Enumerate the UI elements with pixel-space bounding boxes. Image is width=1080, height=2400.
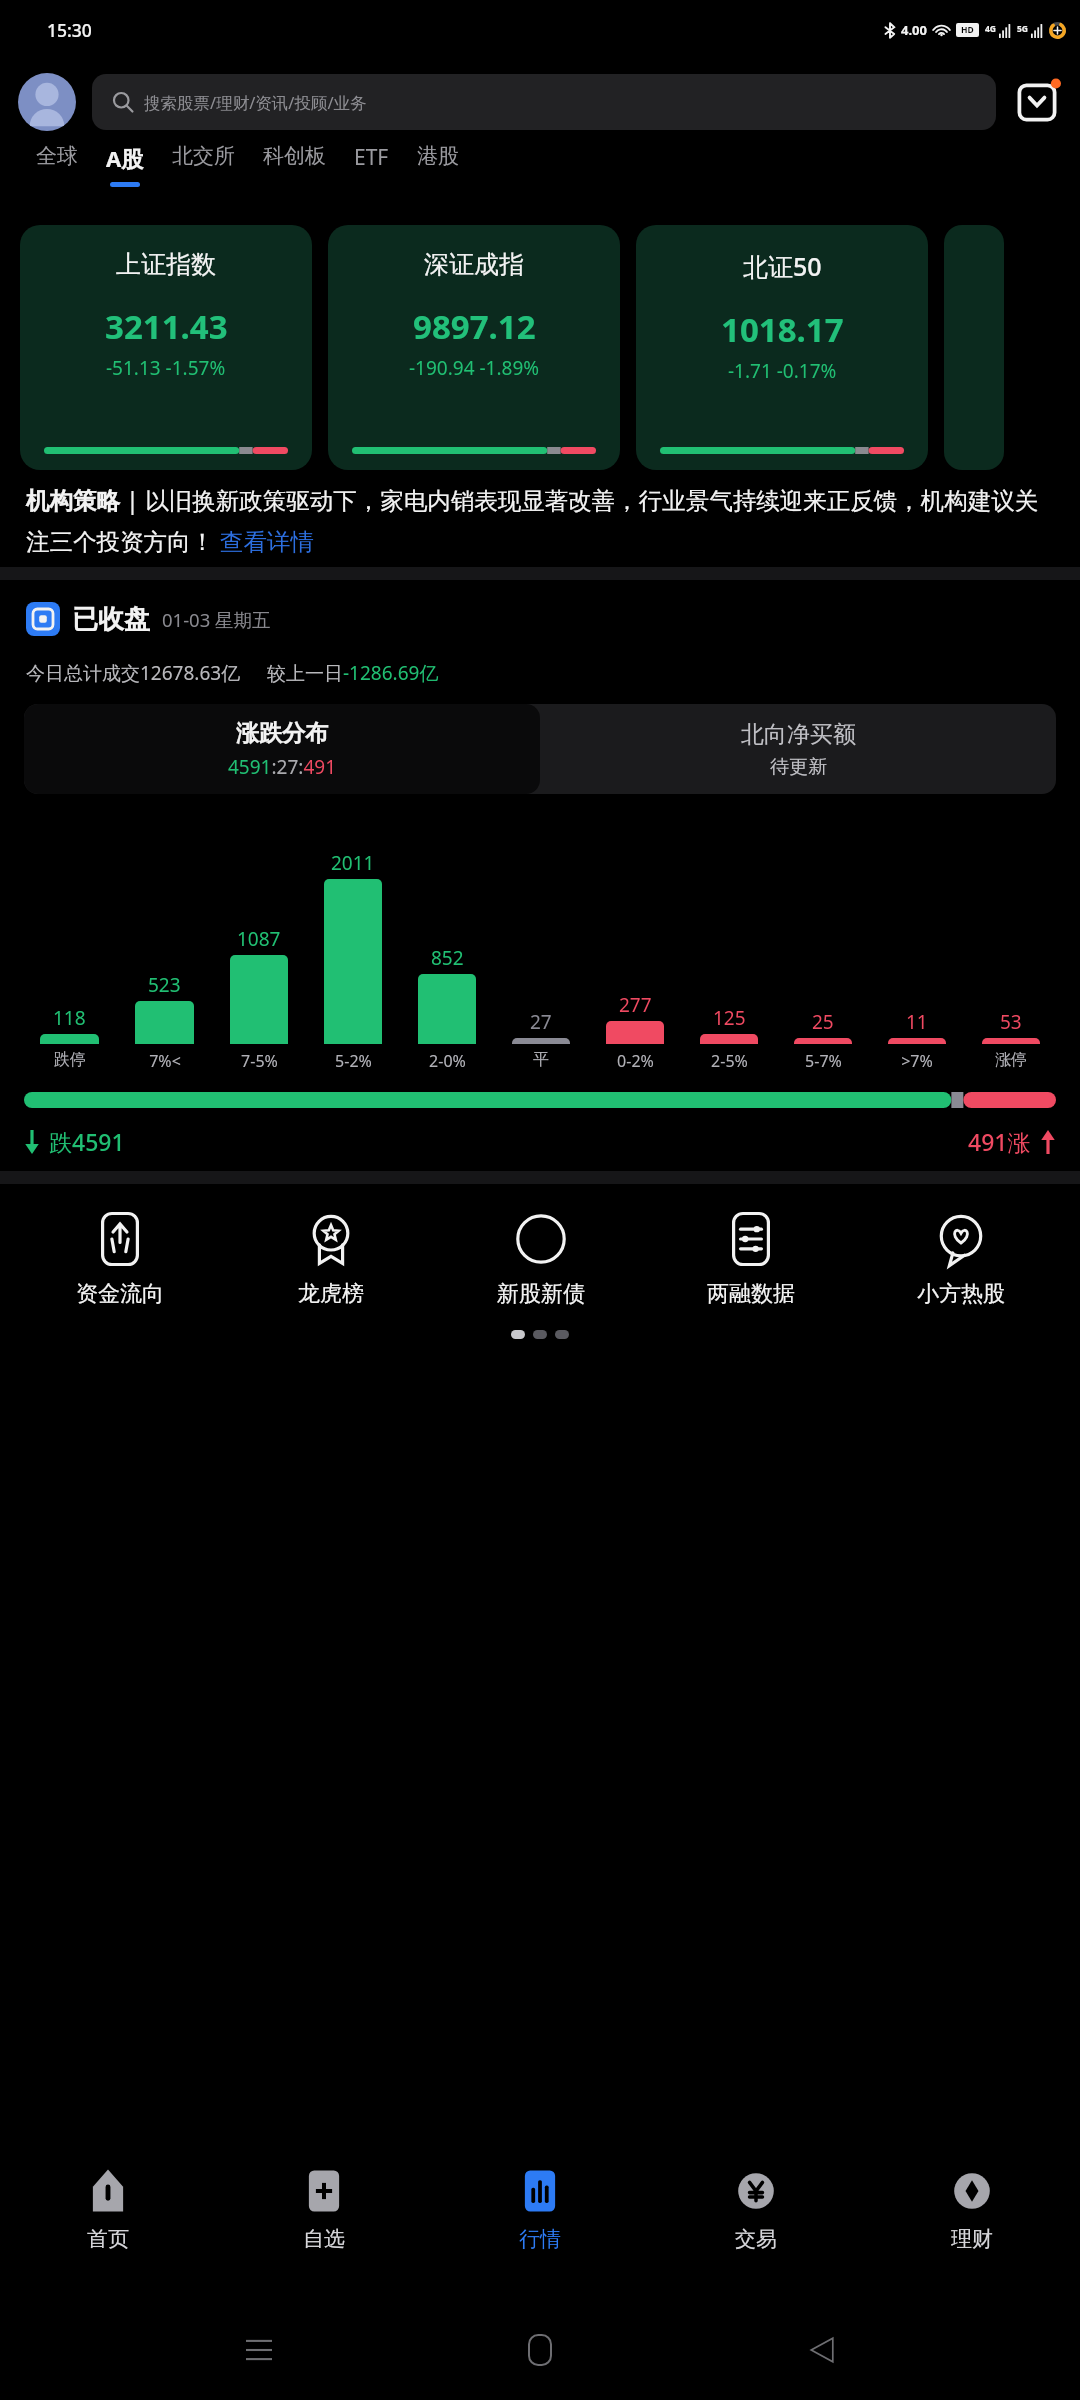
button[interactable]: 11 bbox=[870, 814, 964, 1044]
staticText: 已收盘 bbox=[72, 603, 150, 636]
staticText: 7%< bbox=[149, 1050, 181, 1072]
staticText: 491涨 bbox=[968, 1126, 1031, 1157]
staticText: 龙虎榜 bbox=[298, 1280, 364, 1308]
staticText: 跌4591 bbox=[49, 1126, 125, 1157]
button[interactable]: 27 bbox=[494, 814, 588, 1044]
staticText: 平 bbox=[533, 1050, 549, 1070]
button[interactable]: ETF bbox=[340, 143, 403, 181]
button[interactable]: 自选 bbox=[216, 2164, 432, 2300]
staticText: 两融数据 bbox=[707, 1280, 795, 1308]
staticText: 北证50 bbox=[743, 249, 822, 283]
staticText: 机构策略 | 以旧换新政策驱动下，家电内销表现显著改善，行业景气持续迎来正反馈，… bbox=[26, 484, 1054, 557]
staticText: 上证指数 bbox=[116, 249, 216, 280]
button[interactable]: 上证指数 bbox=[20, 225, 312, 470]
button[interactable]: 科创板 bbox=[249, 143, 340, 178]
staticText: 北交所 bbox=[172, 143, 235, 169]
staticText: 小方热股 bbox=[917, 1280, 1005, 1308]
staticText: 涨停 bbox=[995, 1050, 1027, 1070]
staticText: 9897.12 bbox=[413, 304, 536, 349]
button[interactable]: 龙虎榜 bbox=[225, 1210, 436, 1308]
staticText: 4591:27:491 bbox=[228, 754, 336, 780]
button[interactable]: 理财 bbox=[864, 2164, 1080, 2300]
button[interactable]: 125 bbox=[682, 814, 776, 1044]
staticText: 4.00 bbox=[901, 21, 927, 39]
button[interactable]: 机构策略 | 以旧换新政策驱动下，家电内销表现显著改善，行业景气持续迎来正反馈，… bbox=[26, 484, 1054, 557]
staticText: A股 bbox=[106, 143, 144, 173]
button[interactable]: 小方热股 bbox=[856, 1210, 1066, 1308]
staticText: 523 bbox=[148, 972, 181, 998]
staticText: 2011 bbox=[331, 850, 375, 876]
button[interactable]: Profile bbox=[18, 73, 76, 131]
staticText: 7-5% bbox=[241, 1050, 278, 1072]
staticText: 涨跌分布 bbox=[236, 719, 328, 748]
staticText: 理财 bbox=[951, 2226, 993, 2252]
staticText: -51.13 -1.57% bbox=[106, 355, 226, 381]
staticText: -1.71 -0.17% bbox=[728, 358, 837, 384]
staticText: 5G bbox=[1017, 23, 1029, 35]
button[interactable]: 两融数据 bbox=[646, 1210, 856, 1308]
button[interactable]: 852 bbox=[400, 814, 494, 1044]
staticText: 新股新债 bbox=[497, 1280, 585, 1308]
staticText: 1087 bbox=[237, 926, 281, 952]
staticText: 深证成指 bbox=[424, 249, 524, 280]
button[interactable]: A股 bbox=[92, 143, 158, 187]
staticText: 01-03 星期五 bbox=[162, 607, 271, 632]
staticText: 2-0% bbox=[429, 1050, 466, 1072]
staticText: 资金流向 bbox=[76, 1280, 164, 1308]
staticText: 27 bbox=[530, 1009, 552, 1035]
staticText: 15:30 bbox=[47, 18, 92, 42]
staticText: 852 bbox=[431, 945, 464, 971]
button[interactable]: 深证成指 bbox=[328, 225, 620, 470]
button[interactable]: 277 bbox=[588, 814, 682, 1044]
staticText: 125 bbox=[713, 1005, 746, 1031]
button[interactable]: 523 bbox=[117, 814, 212, 1044]
staticText: 1018.17 bbox=[721, 307, 844, 352]
button[interactable]: Home bbox=[517, 2327, 563, 2373]
staticText: 交易 bbox=[735, 2226, 777, 2252]
staticText: 港股 bbox=[417, 143, 459, 169]
staticText: 今日总计成交12678.63亿 bbox=[26, 660, 241, 686]
staticText: 北向净买额 bbox=[741, 720, 856, 749]
button[interactable]: 新股新债 bbox=[436, 1210, 646, 1308]
staticText: 0-2% bbox=[617, 1050, 654, 1072]
staticText: 首页 bbox=[87, 2226, 129, 2252]
staticText: 较上一日-1286.69亿 bbox=[267, 660, 439, 686]
button[interactable]: 北证50 bbox=[636, 225, 928, 470]
staticText: 行情 bbox=[519, 2226, 561, 2252]
button[interactable]: 交易 bbox=[648, 2164, 864, 2300]
button[interactable]: 行情 bbox=[432, 2164, 648, 2300]
staticText: 11 bbox=[906, 1009, 928, 1035]
staticText: 5-2% bbox=[335, 1050, 372, 1072]
button[interactable]: 港股 bbox=[403, 143, 473, 178]
button[interactable]: 资金流向 bbox=[14, 1210, 225, 1308]
button[interactable]: 北交所 bbox=[158, 143, 249, 178]
staticText: HD bbox=[961, 24, 974, 36]
button[interactable]: Messages bbox=[1012, 77, 1062, 127]
button[interactable]: 53 bbox=[964, 814, 1058, 1044]
button[interactable]: 北向净买额 bbox=[540, 704, 1056, 794]
staticText: 277 bbox=[619, 992, 652, 1018]
staticText: 53 bbox=[1000, 1009, 1022, 1035]
staticText: >7% bbox=[901, 1050, 933, 1072]
staticText: 118 bbox=[53, 1005, 86, 1031]
staticText: 2-5% bbox=[711, 1050, 748, 1072]
staticText: 4G bbox=[985, 23, 997, 35]
staticText: 搜索股票/理财/资讯/投顾/业务 bbox=[144, 91, 367, 114]
button[interactable]: 全球 bbox=[22, 143, 92, 178]
button[interactable]: Back bbox=[799, 2327, 845, 2373]
button[interactable]: 118 bbox=[22, 814, 117, 1044]
button[interactable]: 搜索股票/理财/资讯/投顾/业务 bbox=[92, 74, 996, 130]
button[interactable]: 25 bbox=[776, 814, 870, 1044]
button[interactable]: 2011 bbox=[306, 814, 400, 1044]
staticText: 待更新 bbox=[770, 755, 827, 779]
staticText: -190.94 -1.89% bbox=[409, 355, 540, 381]
staticText: 全球 bbox=[36, 143, 78, 169]
button[interactable]: Recents bbox=[236, 2327, 282, 2373]
staticText: 跌停 bbox=[54, 1050, 86, 1070]
button[interactable]: 涨跌分布 bbox=[24, 704, 540, 794]
staticText: 5-7% bbox=[805, 1050, 842, 1072]
button[interactable]: 1087 bbox=[212, 814, 306, 1044]
staticText: ETF bbox=[354, 143, 389, 172]
staticText: 自选 bbox=[303, 2226, 345, 2252]
button[interactable]: 首页 bbox=[0, 2164, 216, 2300]
